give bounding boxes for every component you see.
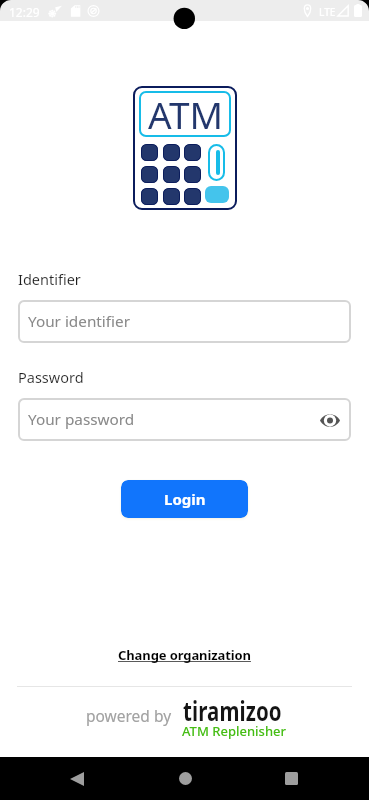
staticText: Your identifier — [28, 311, 130, 332]
staticText: 12:29 — [9, 4, 40, 20]
button[interactable]: Change organization — [114, 642, 255, 668]
staticText: ATM Replenisher — [182, 722, 287, 740]
staticText: LTE — [319, 5, 336, 19]
button[interactable]: Show password — [318, 408, 342, 432]
staticText: tiramizoo — [183, 692, 282, 729]
button[interactable]: Login — [121, 480, 248, 518]
button[interactable]: Your identifier — [18, 300, 351, 343]
staticText: Login — [164, 489, 206, 509]
button[interactable]: Recents — [269, 757, 313, 800]
staticText: ATM — [148, 89, 224, 135]
staticText: powered by — [86, 705, 172, 726]
staticText: Your password — [28, 409, 135, 430]
button[interactable]: Your password — [18, 398, 351, 441]
button[interactable]: Home — [163, 757, 207, 800]
staticText: Change organization — [118, 646, 251, 664]
staticText: Password — [18, 367, 84, 387]
staticText: Identifier — [18, 269, 81, 289]
button[interactable]: Back — [55, 757, 99, 800]
